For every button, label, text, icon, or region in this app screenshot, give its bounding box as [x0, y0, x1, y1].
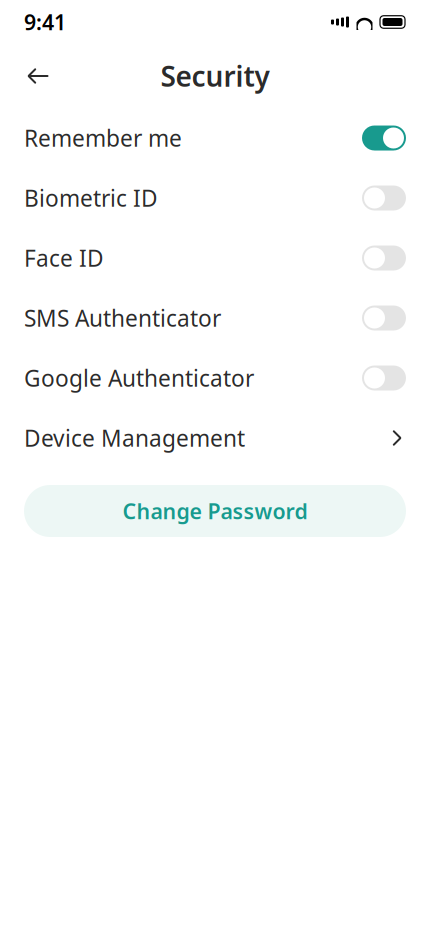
staticText: Remember me — [24, 123, 182, 153]
staticText: Change Password — [122, 497, 307, 525]
staticText: 9:41 — [24, 8, 66, 36]
button[interactable]: Google Authenticator — [0, 348, 430, 408]
staticText: Biometric ID — [24, 183, 158, 213]
staticText: Security — [160, 57, 269, 95]
button[interactable]: Biometric ID — [0, 168, 430, 228]
button[interactable]: SMS Authenticator — [0, 288, 430, 348]
button[interactable]: Remember me — [0, 108, 430, 168]
button[interactable]: Face ID — [0, 228, 430, 288]
staticText: Google Authenticator — [24, 363, 254, 393]
button[interactable]: Back — [16, 54, 60, 98]
staticText: Device Management — [24, 423, 245, 453]
staticText: SMS Authenticator — [24, 303, 221, 333]
staticText: Face ID — [24, 243, 104, 273]
button[interactable]: Change Password — [24, 485, 406, 537]
button[interactable]: Device Management — [0, 408, 430, 468]
